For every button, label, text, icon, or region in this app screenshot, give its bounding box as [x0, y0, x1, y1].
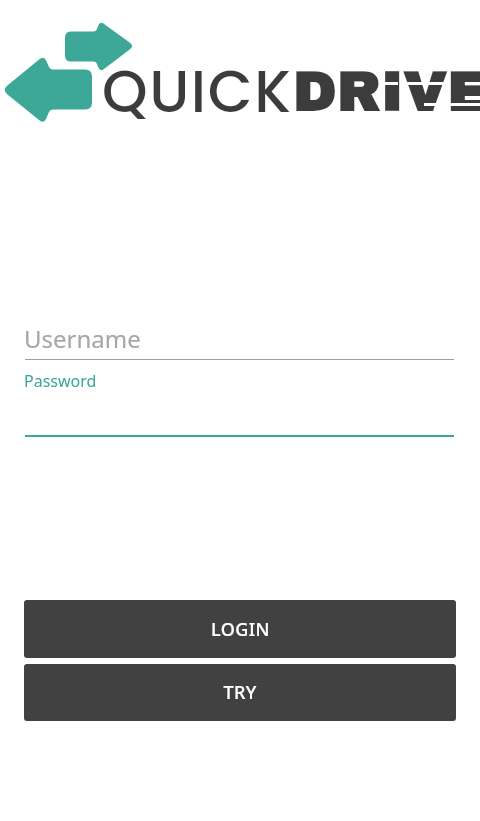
button[interactable]: Username — [0, 322, 480, 362]
button[interactable]: TRY — [24, 664, 456, 721]
staticText: LOGIN — [211, 617, 270, 642]
staticText: Password — [24, 370, 97, 392]
staticText: TRY — [223, 680, 257, 705]
staticText: DRIVE — [293, 61, 480, 122]
staticText: QUICK — [102, 51, 293, 132]
staticText: Username — [24, 322, 141, 355]
button[interactable]: Password — [0, 370, 480, 438]
button[interactable]: LOGIN — [24, 600, 456, 658]
